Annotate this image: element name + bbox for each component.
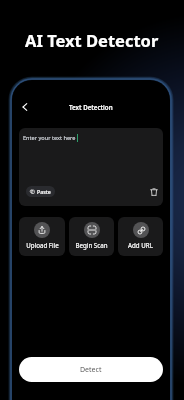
button[interactable]: Detect bbox=[19, 357, 163, 382]
staticText: Add URL bbox=[128, 241, 153, 249]
button[interactable]: Back bbox=[19, 101, 31, 113]
staticText: Upload File bbox=[26, 241, 59, 249]
staticText: Detect bbox=[80, 365, 102, 375]
button[interactable]: Upload File bbox=[19, 217, 65, 256]
staticText: Enter your text here bbox=[23, 134, 76, 142]
staticText: Begin Scan bbox=[75, 241, 108, 249]
staticText: Paste bbox=[37, 188, 51, 195]
button[interactable]: Add URL bbox=[118, 217, 163, 256]
button[interactable]: Enter your text here bbox=[19, 128, 163, 206]
button[interactable]: Begin Scan bbox=[69, 217, 114, 256]
staticText: Text Detection bbox=[69, 103, 113, 111]
staticText: AI Text Detector bbox=[25, 29, 159, 51]
button[interactable]: Delete bbox=[148, 186, 159, 197]
button[interactable]: Paste bbox=[26, 186, 55, 197]
